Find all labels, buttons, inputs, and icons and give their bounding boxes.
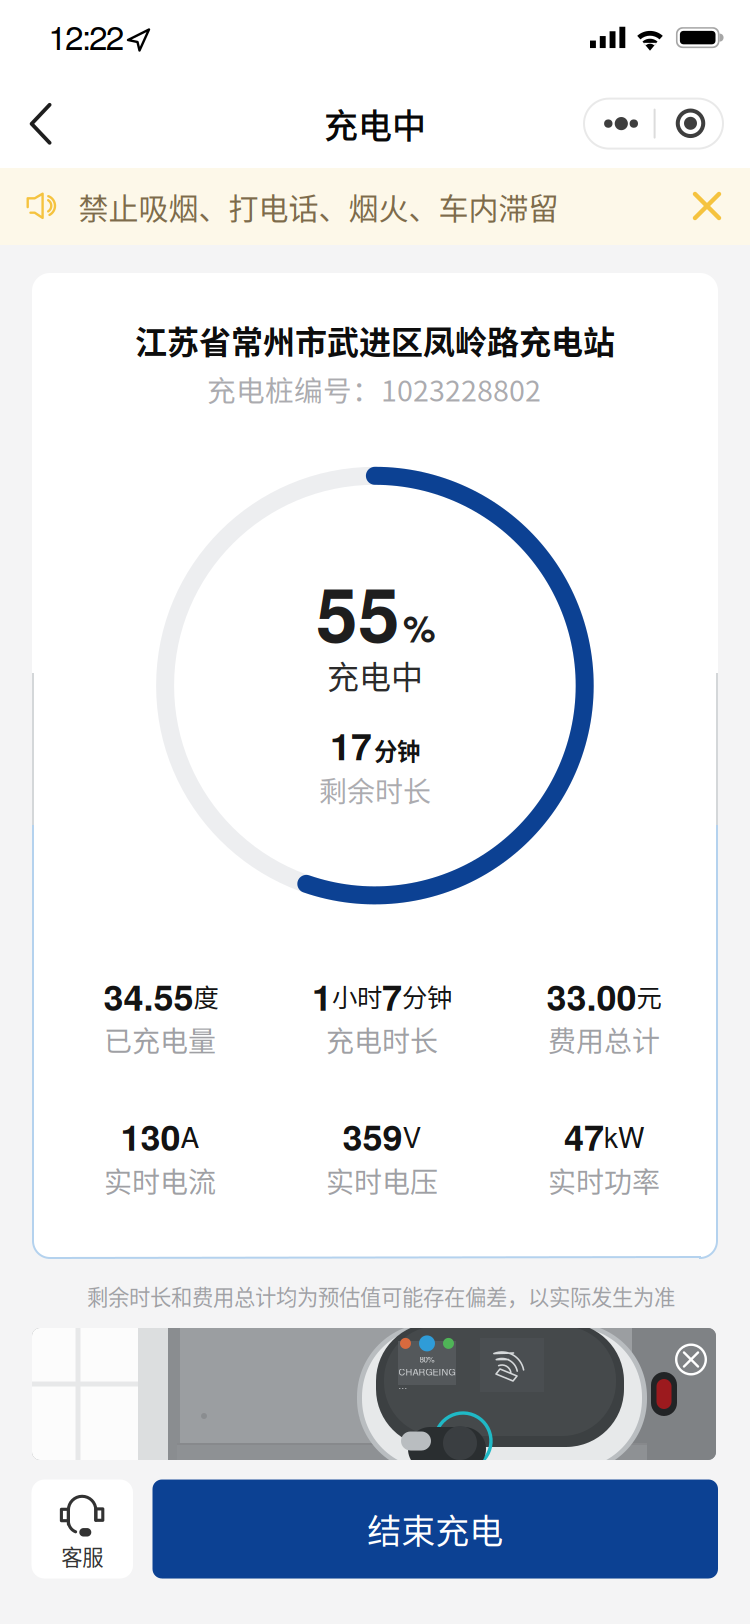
- staticText: V: [402, 1116, 421, 1156]
- button[interactable]: 结束充电: [152, 1479, 718, 1578]
- staticText: 客服: [61, 1541, 103, 1571]
- staticText: A: [180, 1116, 199, 1156]
- staticText: 充电中: [327, 652, 423, 698]
- staticText: 充电桩编号：1023228802: [207, 368, 541, 410]
- staticText: 结束充电: [367, 1504, 503, 1554]
- staticText: 元: [636, 978, 661, 1014]
- staticText: 剩余时长和费用总计均为预估值可能存在偏差，以实际发生为准: [87, 1281, 675, 1311]
- staticText: 小时: [332, 978, 382, 1014]
- staticText: 33.00: [546, 970, 636, 1022]
- staticText: %: [403, 601, 436, 654]
- staticText: 1: [312, 970, 332, 1022]
- staticText: 34.55: [103, 970, 193, 1022]
- staticText: 剩余时长: [319, 770, 431, 810]
- button[interactable]: 关闭: [680, 179, 735, 234]
- button[interactable]: 客服: [31, 1479, 133, 1578]
- button[interactable]: 返回: [21, 94, 83, 154]
- staticText: 充电中: [324, 99, 426, 148]
- staticText: 47: [564, 1110, 604, 1162]
- staticText: kW: [604, 1116, 644, 1156]
- staticText: 分钟: [402, 978, 452, 1014]
- staticText: CHARGEING...: [398, 1365, 455, 1392]
- staticText: 55: [316, 558, 400, 665]
- staticText: 充电时长: [326, 1019, 438, 1060]
- staticText: 江苏省常州市武进区凤岭路充电站: [135, 317, 615, 363]
- staticText: 7: [382, 970, 402, 1022]
- staticText: 已充电量: [104, 1019, 216, 1060]
- staticText: 分钟: [374, 733, 420, 767]
- staticText: 费用总计: [548, 1019, 660, 1060]
- staticText: 17: [330, 718, 372, 772]
- staticText: 12:22: [48, 12, 125, 59]
- staticText: 130: [120, 1110, 180, 1162]
- staticText: 度: [193, 978, 218, 1014]
- staticText: 实时电压: [326, 1160, 438, 1201]
- button[interactable]: 关闭广告: [667, 1335, 715, 1383]
- staticText: 80%: [419, 1353, 434, 1365]
- button[interactable]: 小程序菜单: [655, 97, 725, 149]
- staticText: 实时电流: [104, 1160, 216, 1201]
- staticText: 359: [342, 1110, 402, 1162]
- staticText: 禁止吸烟、打电话、烟火、车内滞留: [78, 185, 558, 228]
- button[interactable]: 更多: [583, 98, 654, 150]
- staticText: 实时功率: [548, 1160, 660, 1201]
